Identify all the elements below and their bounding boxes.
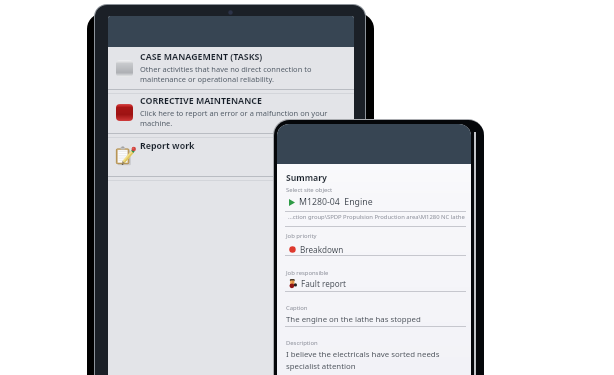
- staticText: Report work: [140, 140, 195, 152]
- staticText: CORRECTIVE MAINTENANCE: [140, 95, 262, 107]
- staticText: CASE MANAGEMENT (TASKS): [140, 51, 263, 63]
- staticText: Other activities that have no direct con…: [140, 64, 312, 85]
- staticText: Breakdown: [300, 244, 344, 255]
- staticText: The engine on the lathe has stopped: [286, 314, 421, 325]
- staticText: Fault report: [301, 278, 347, 289]
- staticText: Summary: [286, 172, 327, 184]
- button[interactable]: Fault report: [277, 277, 471, 289]
- button[interactable]: Breakdown: [277, 243, 471, 255]
- staticText: ...ction group\SPDP Propulsion Productio…: [288, 213, 465, 221]
- staticText: Select site object: [286, 186, 333, 194]
- staticText: I believe the electricals have sorted ne…: [286, 349, 440, 372]
- staticText: M1280-04 Engine: [299, 196, 373, 208]
- staticText: Job priority: [286, 232, 317, 240]
- staticText: Description: [286, 339, 318, 347]
- button[interactable]: M1280-04 Engine: [277, 196, 471, 208]
- staticText: Job responsible: [286, 269, 329, 277]
- button[interactable]: Report work: [108, 135, 354, 176]
- staticText: Click here to report an error or a malfu…: [140, 108, 328, 129]
- button[interactable]: CASE MANAGEMENT (TASKS): [108, 47, 354, 89]
- button[interactable]: CORRECTIVE MAINTENANCE: [108, 91, 354, 133]
- staticText: Caption: [286, 304, 308, 312]
